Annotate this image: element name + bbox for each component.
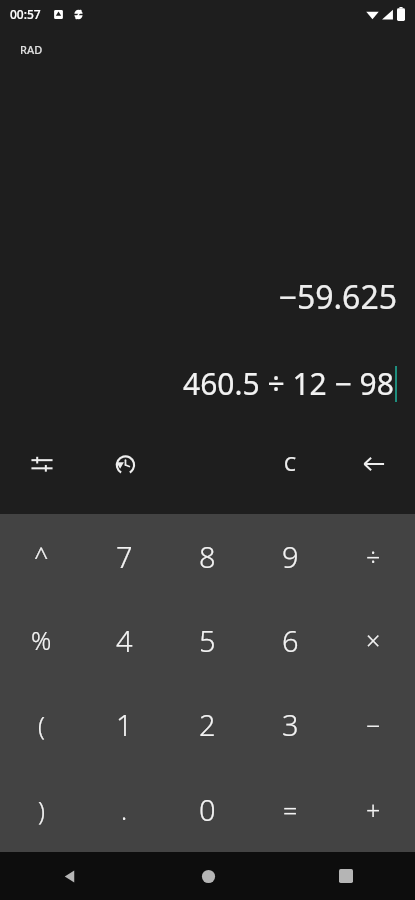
button[interactable]: C bbox=[249, 436, 332, 492]
button[interactable]: 2 bbox=[166, 682, 249, 767]
button[interactable]: . bbox=[83, 767, 166, 852]
staticText: −59.625 bbox=[278, 275, 397, 319]
staticText: C bbox=[284, 451, 297, 477]
staticText: 460.5 ÷ 12 − 98 bbox=[183, 363, 394, 404]
staticText: 00:57 bbox=[10, 6, 41, 22]
staticText: 4 bbox=[116, 621, 133, 660]
staticText: × bbox=[366, 623, 381, 657]
button[interactable]: = bbox=[249, 767, 332, 852]
staticText: 1 bbox=[116, 705, 133, 744]
staticText: 5 bbox=[199, 621, 216, 660]
button[interactable]: + bbox=[332, 767, 415, 852]
staticText: % bbox=[31, 623, 52, 657]
button[interactable]: 0 bbox=[166, 767, 249, 852]
button[interactable]: 5 bbox=[166, 598, 249, 682]
staticText: 0 bbox=[199, 790, 216, 829]
button[interactable]: ÷ bbox=[332, 514, 415, 598]
staticText: ^ bbox=[34, 539, 49, 573]
button[interactable]: Settings bbox=[0, 436, 83, 492]
staticText: ) bbox=[38, 793, 45, 827]
button[interactable]: 7 bbox=[83, 514, 166, 598]
button[interactable]: % bbox=[0, 598, 83, 682]
button[interactable]: 3 bbox=[249, 682, 332, 767]
staticText: + bbox=[366, 793, 381, 827]
staticText: 8 bbox=[199, 537, 216, 576]
button[interactable]: 9 bbox=[249, 514, 332, 598]
staticText: − bbox=[366, 708, 381, 742]
button[interactable]: 8 bbox=[166, 514, 249, 598]
staticText: 6 bbox=[282, 621, 299, 660]
button[interactable]: 1 bbox=[83, 682, 166, 767]
button[interactable]: ^ bbox=[0, 514, 83, 598]
staticText: 2 bbox=[199, 705, 216, 744]
staticText: ( bbox=[38, 708, 45, 742]
staticText: = bbox=[283, 793, 298, 827]
staticText: RAD bbox=[20, 42, 43, 57]
button[interactable]: Recents bbox=[277, 852, 415, 900]
button[interactable]: ) bbox=[0, 767, 83, 852]
staticText: ÷ bbox=[366, 539, 381, 573]
staticText: 3 bbox=[282, 705, 299, 744]
staticText: 7 bbox=[116, 537, 133, 576]
button[interactable]: 6 bbox=[249, 598, 332, 682]
button[interactable]: ( bbox=[0, 682, 83, 767]
button[interactable]: − bbox=[332, 682, 415, 767]
staticText: 9 bbox=[282, 537, 299, 576]
button[interactable]: Home bbox=[139, 852, 277, 900]
button[interactable]: × bbox=[332, 598, 415, 682]
button[interactable]: Delete bbox=[332, 436, 415, 492]
button[interactable]: 4 bbox=[83, 598, 166, 682]
staticText: . bbox=[121, 793, 128, 827]
button[interactable]: Back bbox=[0, 852, 139, 900]
button[interactable]: History bbox=[83, 436, 166, 492]
